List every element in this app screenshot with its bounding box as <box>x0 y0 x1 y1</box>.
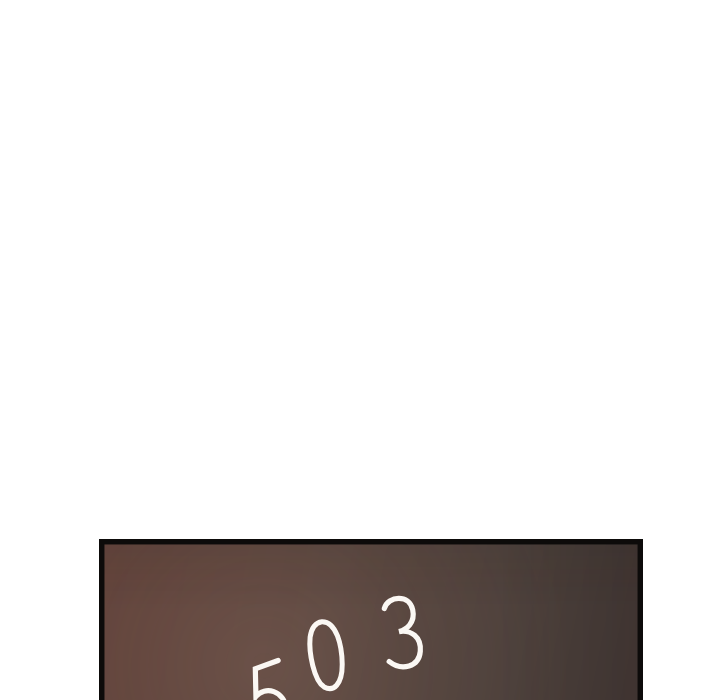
button[interactable]: Comic panel showing door number 503 <box>0 0 720 700</box>
